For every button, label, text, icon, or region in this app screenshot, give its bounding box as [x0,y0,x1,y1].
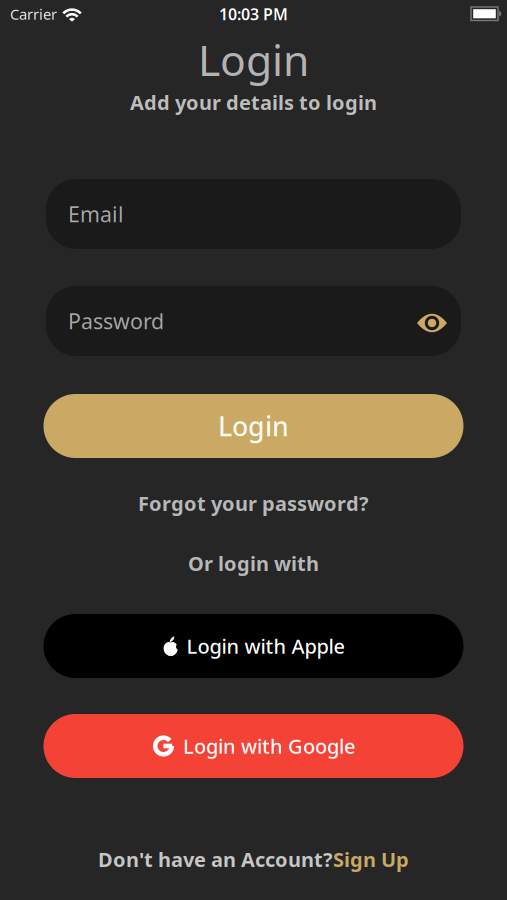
button[interactable]: Forgot your password? [138,490,369,517]
staticText: Sign Up [333,846,409,873]
staticText: Carrier [10,4,57,24]
staticText: Email [68,200,124,228]
button[interactable]: Login with Apple [43,614,463,678]
button[interactable]: Sign Up [333,846,409,873]
button[interactable]: Show password [417,312,447,334]
button[interactable]: Login [43,394,463,458]
button[interactable]: Email [46,179,461,249]
staticText: Password [68,307,164,335]
staticText: Add your details to login [130,89,377,116]
staticText: Login [198,31,309,88]
staticText: Or login with [188,550,319,577]
staticText: Don't have an Account? [98,846,333,873]
staticText: 10:03 PM [219,3,288,25]
button[interactable]: Password [46,286,461,356]
button[interactable]: Login with Google [43,714,463,778]
staticText: Login [218,408,289,444]
staticText: Login with Apple [186,633,344,659]
staticText: Forgot your password? [138,490,369,517]
staticText: Login with Google [183,733,355,759]
